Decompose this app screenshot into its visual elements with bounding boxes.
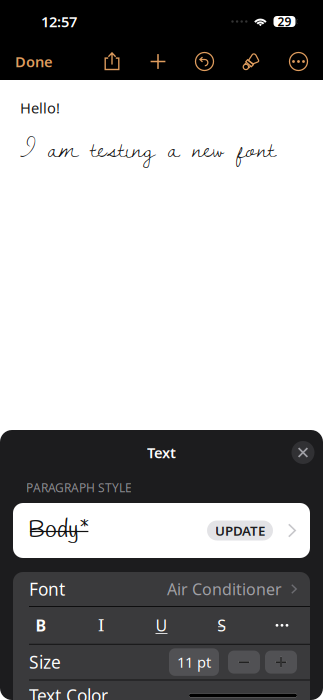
staticText: U [155,615,167,636]
staticText: Hello! [20,98,60,117]
button[interactable]: Markup [228,43,275,80]
button[interactable]: Close [287,436,319,468]
button[interactable]: Font [13,572,310,606]
staticText: Done [15,52,53,71]
staticText: 11 pt [177,652,211,672]
button[interactable]: Increase size [265,651,297,674]
button[interactable]: U [141,607,181,644]
button[interactable]: More formatting [262,607,302,644]
staticText: 12:57 [41,12,77,31]
staticText: 29 [277,13,291,29]
staticText: Font [29,577,65,600]
button[interactable]: Undo [181,43,228,80]
staticText: Text [147,443,176,462]
staticText: UPDATE [215,522,265,539]
button[interactable]: B [21,607,61,644]
button[interactable]: Done [0,43,89,80]
staticText: I [98,615,105,635]
staticText: B [35,615,46,636]
button[interactable]: Add [135,43,181,80]
staticText: Size [29,651,61,674]
staticText: Air Conditioner [167,578,282,600]
button[interactable]: I [81,607,121,644]
button[interactable]: Share [89,43,135,80]
button[interactable]: Body* [13,503,310,558]
button[interactable]: Decrease size [228,651,260,674]
button[interactable]: S [202,607,242,644]
staticText: S [217,615,226,636]
staticText: I am testing a new font [20,125,276,171]
staticText: Text Color [29,684,108,700]
staticText: PARAGRAPH STYLE [26,479,132,495]
staticText: Body* [28,514,90,546]
button[interactable]: More [275,43,322,80]
